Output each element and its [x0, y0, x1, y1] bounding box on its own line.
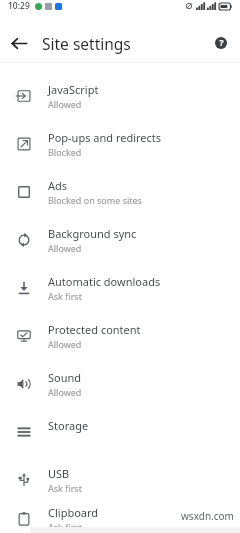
- button[interactable]: Back: [0, 24, 38, 62]
- staticText: Site settings: [42, 33, 131, 54]
- staticText: USB: [48, 466, 70, 481]
- staticText: Ask first: [48, 482, 82, 494]
- staticText: 10:29: [8, 0, 30, 12]
- staticText: Allowed: [48, 386, 82, 398]
- staticText: Background sync: [48, 226, 137, 241]
- staticText: Storage: [48, 418, 89, 433]
- staticText: Ask first: [48, 521, 82, 533]
- button[interactable]: USB: [0, 456, 240, 504]
- staticText: Pop-ups and redirects: [48, 130, 162, 145]
- staticText: Ads: [48, 178, 68, 193]
- staticText: Blocked on some sites: [48, 194, 142, 206]
- button[interactable]: Background sync: [0, 216, 240, 264]
- staticText: wsxdn.com: [181, 509, 234, 523]
- staticText: Clipboard: [48, 505, 99, 520]
- staticText: Allowed: [48, 98, 82, 110]
- button[interactable]: Automatic downloads: [0, 264, 240, 312]
- staticText: Protected content: [48, 322, 141, 337]
- staticText: ?: [219, 37, 224, 49]
- staticText: Sound: [48, 370, 82, 385]
- staticText: JavaScript: [48, 82, 99, 97]
- button[interactable]: JavaScript: [0, 72, 240, 120]
- staticText: Automatic downloads: [48, 274, 161, 289]
- button[interactable]: Sound: [0, 360, 240, 408]
- staticText: Allowed: [48, 242, 82, 254]
- button[interactable]: Ads: [0, 168, 240, 216]
- button[interactable]: Clipboard: [0, 504, 240, 533]
- staticText: Allowed: [48, 338, 82, 350]
- button[interactable]: Storage: [0, 408, 240, 456]
- staticText: Ask first: [48, 290, 82, 302]
- button[interactable]: Help: [202, 24, 240, 62]
- button[interactable]: Protected content: [0, 312, 240, 360]
- staticText: Blocked: [48, 146, 82, 158]
- button[interactable]: Pop-ups and redirects: [0, 120, 240, 168]
